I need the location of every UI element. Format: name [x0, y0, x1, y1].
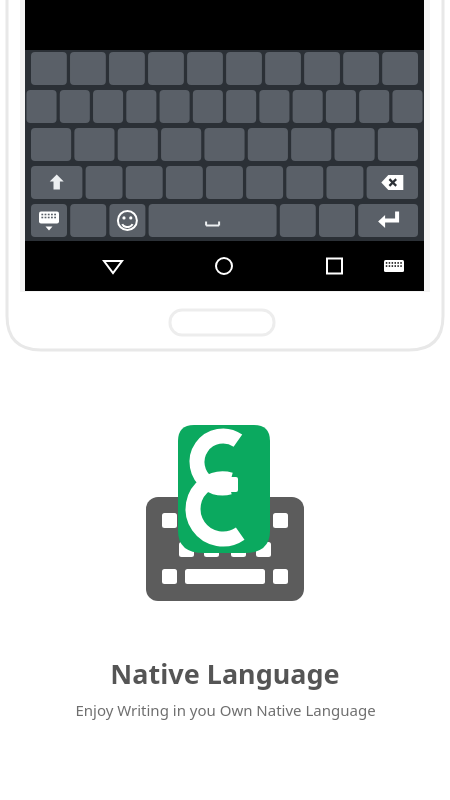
staticText: Enjoy Writing in you Own Native Language [75, 700, 376, 720]
staticText: Native Language [110, 655, 340, 692]
button[interactable]: Keyboard [25, 50, 424, 241]
